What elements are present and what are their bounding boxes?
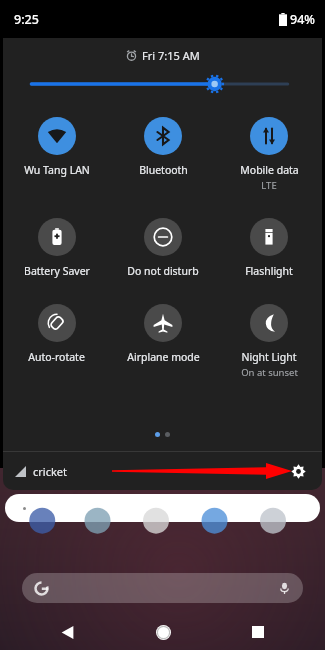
staticText: Bluetooth [139, 163, 188, 177]
staticText: 9:25 [14, 11, 39, 28]
button[interactable]: Search [22, 573, 303, 603]
button[interactable]: Recents [245, 619, 271, 645]
staticText: On at sunset [241, 366, 298, 379]
button[interactable]: Flashlight [216, 216, 322, 280]
button[interactable]: Back [54, 619, 80, 645]
button[interactable]: Wu Tang LAN [3, 115, 110, 179]
button[interactable]: Airplane mode [110, 302, 216, 366]
button[interactable]: Night Light [216, 302, 322, 381]
staticText: Auto-rotate [28, 350, 85, 364]
button[interactable]: cricket [15, 464, 67, 479]
staticText: Mobile data [240, 163, 299, 177]
button[interactable]: Settings [284, 457, 312, 485]
staticText: cricket [33, 464, 67, 479]
staticText: LTE [261, 179, 277, 192]
staticText: 94% [290, 11, 315, 28]
staticText: Flashlight [245, 264, 293, 278]
button[interactable]: Battery Saver [3, 216, 110, 280]
staticText: Fri 7:15 AM [142, 48, 200, 63]
button[interactable]: Home [150, 619, 176, 645]
button[interactable]: Auto-rotate [3, 302, 110, 366]
staticText: Night Light [241, 350, 297, 364]
staticText: Do not disturb [127, 264, 199, 278]
staticText: Wu Tang LAN [24, 163, 90, 177]
button[interactable]: Do not disturb [110, 216, 216, 280]
staticText: Battery Saver [24, 264, 90, 278]
button[interactable]: Brightness [3, 71, 322, 97]
button[interactable]: Bluetooth [110, 115, 216, 179]
staticText: Airplane mode [127, 350, 200, 364]
button[interactable]: Mobile data [216, 115, 322, 194]
